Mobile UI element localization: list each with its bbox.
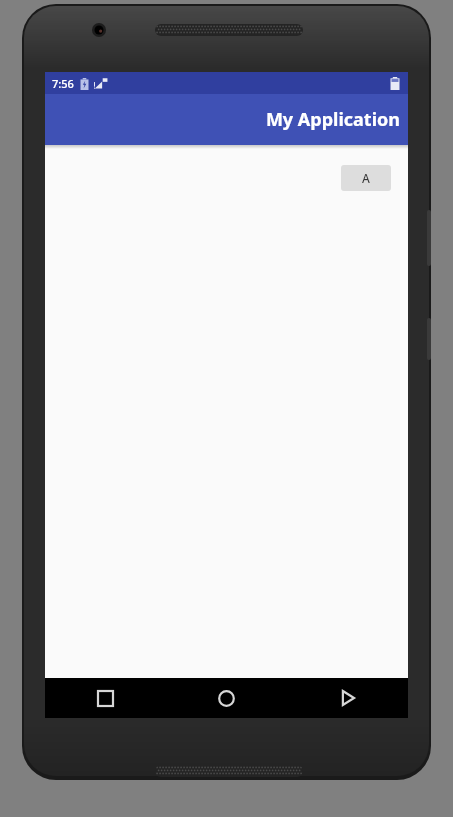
staticText: 7:56 bbox=[52, 76, 74, 91]
staticText: My Application bbox=[265, 107, 400, 132]
button[interactable]: Back bbox=[287, 678, 408, 718]
staticText: A bbox=[362, 170, 370, 186]
button[interactable]: Recent apps bbox=[45, 678, 166, 718]
button[interactable]: A bbox=[341, 165, 391, 191]
button[interactable]: Home bbox=[166, 678, 287, 718]
